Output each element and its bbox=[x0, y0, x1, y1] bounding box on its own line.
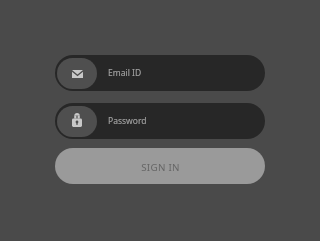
staticText: SIGN IN bbox=[141, 161, 180, 174]
button[interactable]: SIGN IN bbox=[55, 148, 265, 184]
staticText: Password bbox=[108, 115, 147, 127]
button[interactable]: Email ID bbox=[55, 55, 265, 91]
button[interactable]: Password bbox=[55, 103, 265, 139]
staticText: Email ID bbox=[108, 67, 142, 79]
